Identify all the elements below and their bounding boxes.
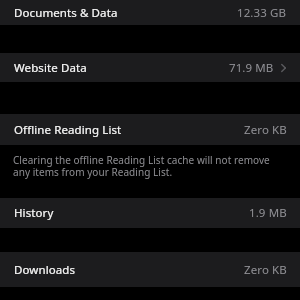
button[interactable]: Downloads	[0, 252, 300, 287]
staticText: 71.9 MB	[229, 60, 274, 76]
button[interactable]: Documents & Data	[0, 0, 300, 25]
staticText: Clearing the offline Reading List cache …	[13, 153, 284, 179]
staticText: 12.33 GB	[237, 5, 287, 21]
staticText: Documents & Data	[14, 5, 118, 21]
staticText: History	[14, 205, 54, 221]
staticText: Zero KB	[244, 262, 287, 278]
staticText: Downloads	[14, 262, 76, 278]
button[interactable]: Offline Reading List	[0, 114, 300, 145]
button[interactable]: Website Data	[0, 53, 300, 82]
button[interactable]: History	[0, 198, 300, 228]
staticText: Website Data	[14, 60, 87, 76]
staticText: Offline Reading List	[14, 122, 122, 138]
staticText: 1.9 MB	[249, 205, 287, 221]
staticText: Zero KB	[244, 122, 287, 138]
